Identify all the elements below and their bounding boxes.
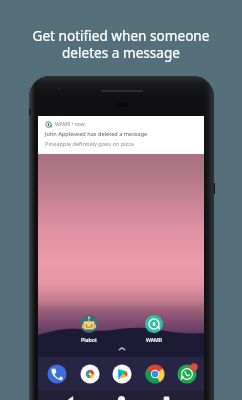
button[interactable]: Recents [162,395,171,400]
staticText: WAMR • now [55,121,85,128]
button[interactable]: Back [66,395,75,400]
staticText: Piabot [81,336,97,343]
button[interactable]: Chrome [144,363,166,385]
staticText: WAMR [146,336,163,343]
button[interactable]: Camera [79,363,101,385]
button[interactable]: Home [117,395,126,400]
button[interactable]: WAMR [139,315,169,343]
staticText: Get notified when someone deletes a mess… [0,26,242,62]
staticText: Pineapple definitely goes on pizza [45,140,134,148]
button[interactable]: Open app drawer [117,344,127,354]
staticText: John Appleseed has deleted a message [45,130,148,138]
button[interactable]: Piabot [74,315,104,343]
button[interactable]: Play Store [111,363,133,385]
button[interactable]: Phone [46,363,68,385]
button[interactable]: WhatsApp [176,363,198,385]
